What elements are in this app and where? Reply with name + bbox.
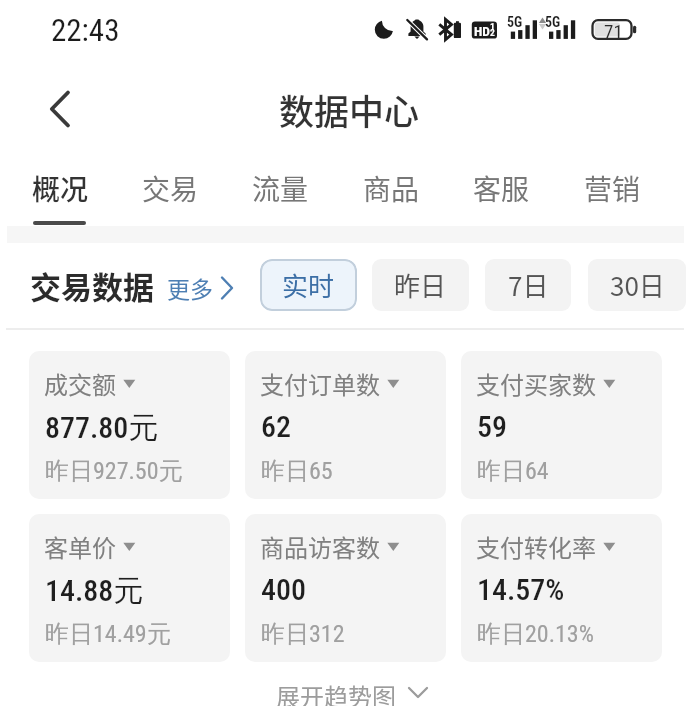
staticText: 支付买家数: [476, 366, 596, 401]
staticText: 实时: [282, 266, 335, 304]
staticText: 交易: [142, 168, 199, 209]
staticText: 昨日64: [477, 456, 549, 486]
button[interactable]: 交易: [115, 145, 225, 226]
staticText: 昨日312: [261, 619, 345, 649]
staticText: 概况: [32, 168, 89, 209]
staticText: 59: [477, 409, 507, 444]
button[interactable]: 支付转化率: [461, 514, 662, 662]
button[interactable]: 客单价: [29, 514, 230, 662]
staticText: 流量: [252, 168, 309, 209]
staticText: 7日: [508, 266, 549, 304]
button[interactable]: 30日: [588, 259, 686, 311]
staticText: 400: [261, 572, 306, 607]
staticText: 14.88元: [45, 572, 144, 610]
staticText: 展开趋势图: [276, 678, 396, 706]
button[interactable]: 流量: [225, 145, 335, 226]
staticText: 877.80元: [45, 409, 159, 447]
button[interactable]: 7日: [485, 259, 571, 311]
staticText: 成交额: [44, 366, 116, 401]
button[interactable]: Back: [28, 75, 80, 127]
staticText: 14.57%: [477, 572, 565, 607]
staticText: 商品访客数: [260, 529, 380, 564]
button[interactable]: 实时: [260, 259, 357, 311]
staticText: 支付订单数: [260, 366, 380, 401]
staticText: 客单价: [44, 529, 116, 564]
staticText: 交易数据: [30, 263, 154, 308]
staticText: 昨日927.50元: [45, 456, 183, 486]
staticText: HD: [474, 23, 490, 39]
button[interactable]: 支付订单数: [245, 351, 446, 499]
staticText: 昨日20.13%: [477, 619, 594, 649]
staticText: 5G: [507, 14, 523, 30]
staticText: 客服: [473, 168, 530, 209]
staticText: 更多: [167, 271, 213, 304]
button[interactable]: 支付买家数: [461, 351, 662, 499]
staticText: 5G: [545, 14, 561, 30]
button[interactable]: 展开趋势图: [276, 678, 429, 706]
staticText: 2: [490, 27, 495, 38]
button[interactable]: 概况: [5, 145, 115, 226]
button[interactable]: 客服: [446, 145, 556, 226]
staticText: 1: [490, 21, 495, 32]
button[interactable]: 营销: [557, 145, 667, 226]
staticText: 昨日: [394, 266, 447, 304]
button[interactable]: 交易数据: [30, 263, 243, 308]
staticText: 昨日65: [261, 456, 333, 486]
staticText: 62: [261, 409, 291, 444]
staticText: 71: [604, 20, 623, 42]
button[interactable]: 商品: [336, 145, 446, 226]
button[interactable]: 昨日: [372, 259, 469, 311]
staticText: 数据中心: [279, 84, 420, 135]
staticText: 30日: [610, 266, 665, 304]
staticText: 营销: [584, 168, 641, 209]
button[interactable]: 成交额: [29, 351, 230, 499]
staticText: 昨日14.49元: [45, 619, 171, 649]
staticText: 22:43: [51, 12, 120, 48]
staticText: 支付转化率: [476, 529, 596, 564]
button[interactable]: 商品访客数: [245, 514, 446, 662]
staticText: 商品: [363, 168, 420, 209]
